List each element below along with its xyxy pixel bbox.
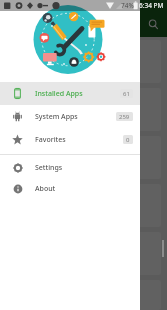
staticText: 6:34 PM: [139, 1, 164, 10]
staticText: About: [35, 184, 56, 194]
button[interactable]: [6, 280, 161, 310]
button[interactable]: Favorites: [0, 128, 140, 151]
staticText: 0: [126, 136, 130, 144]
staticText: Settings: [35, 163, 63, 173]
button[interactable]: Settings: [0, 157, 140, 178]
button[interactable]: [6, 40, 161, 83]
button[interactable]: Installed Apps: [0, 82, 140, 105]
staticText: 259: [119, 113, 130, 121]
button[interactable]: System Apps: [0, 105, 140, 128]
staticText: 61: [123, 90, 130, 98]
button[interactable]: [6, 184, 161, 227]
staticText: 74%: [121, 1, 134, 10]
staticText: System Apps: [35, 112, 78, 122]
button[interactable]: Search: [144, 15, 163, 34]
button[interactable]: [6, 136, 161, 179]
button[interactable]: [6, 232, 161, 275]
staticText: Installed Apps: [35, 89, 83, 99]
staticText: Favorites: [35, 135, 66, 145]
button[interactable]: [6, 88, 161, 131]
button[interactable]: About: [0, 178, 140, 199]
